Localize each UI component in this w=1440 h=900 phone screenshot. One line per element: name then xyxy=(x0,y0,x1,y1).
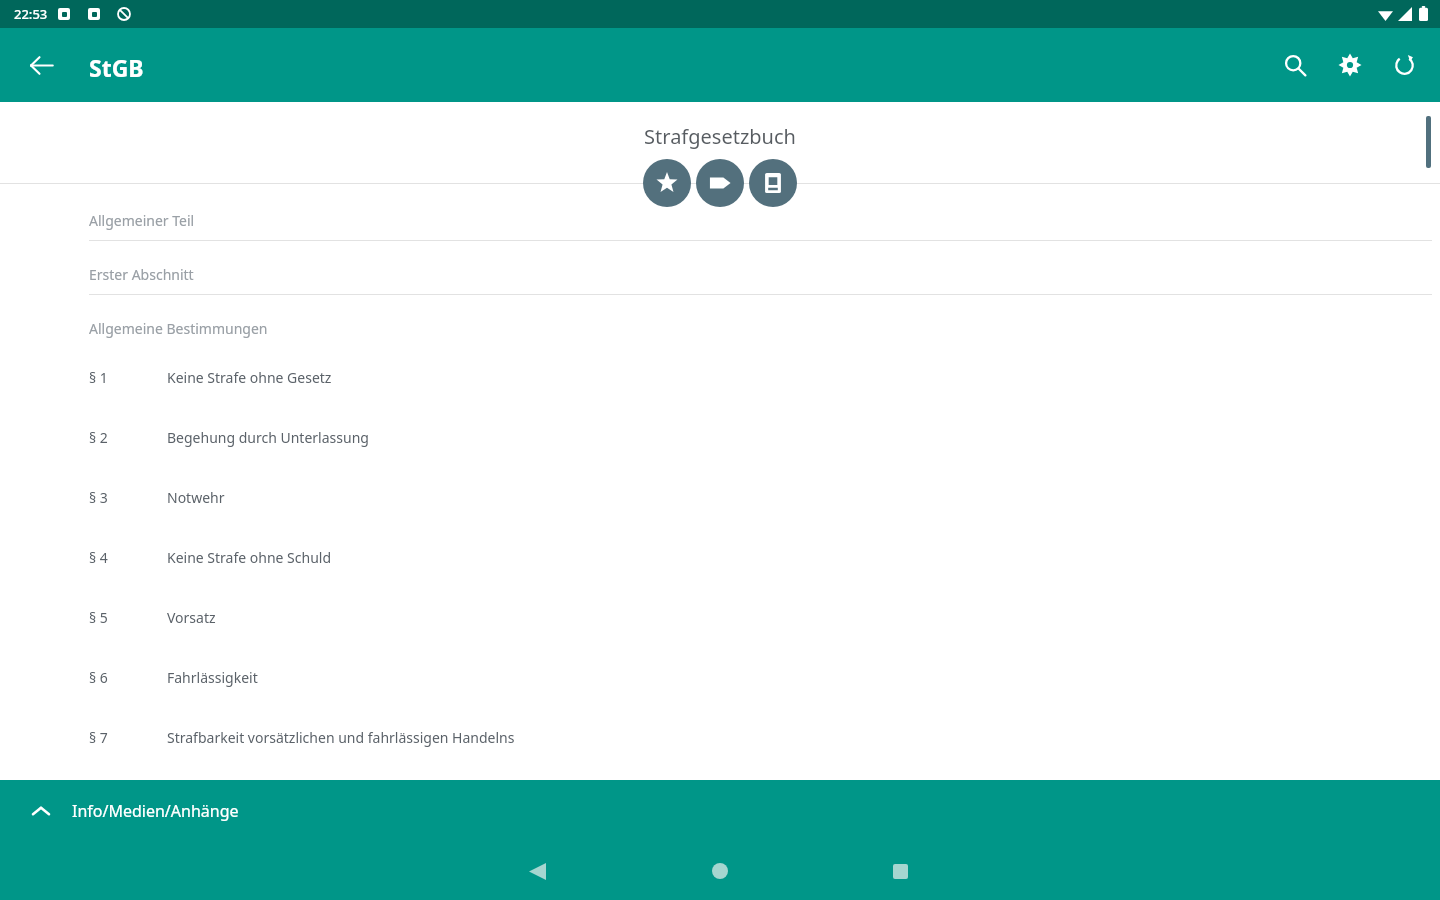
button[interactable]: Allgemeiner Teil xyxy=(0,201,1440,240)
button[interactable]: § 4 xyxy=(0,527,1440,587)
button[interactable]: Refresh xyxy=(1380,41,1428,89)
staticText: Notwehr xyxy=(167,488,225,507)
button[interactable]: Home xyxy=(696,847,744,895)
staticText: § 6 xyxy=(89,668,167,687)
button[interactable]: Search xyxy=(1271,41,1319,89)
staticText: Keine Strafe ohne Schuld xyxy=(167,548,332,567)
button[interactable]: Favorites xyxy=(643,159,691,207)
button[interactable]: § 3 xyxy=(0,467,1440,527)
staticText: § 2 xyxy=(89,428,167,447)
staticText: Vorsatz xyxy=(167,608,216,627)
button[interactable]: § 6 xyxy=(0,647,1440,707)
staticText: Fahrlässigkeit xyxy=(167,668,258,687)
button[interactable]: Settings xyxy=(1326,41,1374,89)
staticText: Allgemeine Bestimmungen xyxy=(89,319,268,338)
button[interactable]: Labels xyxy=(696,159,744,207)
staticText: 22:53 xyxy=(14,5,48,23)
staticText: Strafbarkeit vorsätzlichen und fahrlässi… xyxy=(167,728,515,747)
button[interactable]: § 2 xyxy=(0,407,1440,467)
staticText: Keine Strafe ohne Gesetz xyxy=(167,368,332,387)
button[interactable]: § 5 xyxy=(0,587,1440,647)
staticText: § 1 xyxy=(89,368,167,387)
staticText: § 5 xyxy=(89,608,167,627)
staticText: Info/Medien/Anhänge xyxy=(72,800,239,822)
button[interactable]: Info/Medien/Anhänge xyxy=(0,780,1440,842)
staticText: § 3 xyxy=(89,488,167,507)
button[interactable]: Allgemeine Bestimmungen xyxy=(0,309,1440,348)
button[interactable]: Recents xyxy=(876,847,924,895)
staticText: Strafgesetzbuch xyxy=(0,123,1440,150)
staticText: StGB xyxy=(89,52,144,83)
button[interactable]: Back xyxy=(17,41,65,89)
staticText: Allgemeiner Teil xyxy=(89,211,195,230)
staticText: Begehung durch Unterlassung xyxy=(167,428,369,447)
button[interactable]: § 1 xyxy=(0,347,1440,407)
button[interactable]: § 7 xyxy=(0,707,1440,767)
button[interactable]: Back xyxy=(513,847,561,895)
button[interactable]: Erster Abschnitt xyxy=(0,255,1440,294)
staticText: Erster Abschnitt xyxy=(89,265,194,284)
staticText: § 4 xyxy=(89,548,167,567)
button[interactable]: Notes xyxy=(749,159,797,207)
staticText: § 7 xyxy=(89,728,167,747)
